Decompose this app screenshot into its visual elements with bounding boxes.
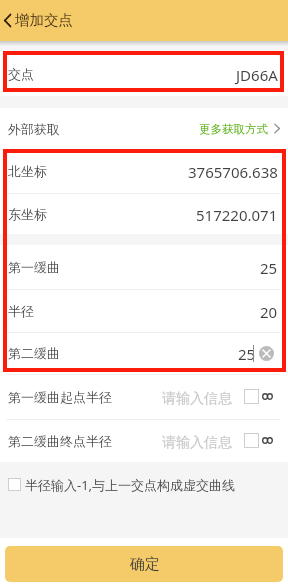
staticText: 25 bbox=[238, 344, 256, 364]
staticText: 20 bbox=[260, 302, 278, 322]
button[interactable]: Back bbox=[0, 0, 15, 41]
staticText: 增加交点 bbox=[15, 11, 73, 29]
staticText: 确定 bbox=[130, 555, 160, 574]
staticText: 3765706.638 bbox=[188, 162, 278, 182]
staticText: 请输入信息 bbox=[162, 434, 232, 452]
button[interactable]: Clear text bbox=[259, 346, 274, 361]
button[interactable]: 半径 bbox=[0, 289, 288, 332]
staticText: JD66A bbox=[236, 65, 278, 85]
staticText: 交点 bbox=[8, 66, 34, 82]
button[interactable]: 确定 bbox=[5, 546, 283, 582]
button[interactable]: 半径输入-1,与上一交点构成虚交曲线 bbox=[0, 470, 288, 498]
staticText: 半径输入-1,与上一交点构成虚交曲线 bbox=[25, 476, 236, 494]
staticText: 北坐标 bbox=[8, 163, 47, 179]
staticText: 25 bbox=[260, 258, 278, 278]
button[interactable]: 第二缓曲终点半径 bbox=[0, 419, 288, 462]
button[interactable]: 北坐标 bbox=[0, 149, 288, 193]
staticText: 请输入信息 bbox=[162, 390, 232, 408]
button[interactable]: 第二缓曲 bbox=[0, 332, 288, 374]
button[interactable]: 外部获取 bbox=[0, 108, 288, 149]
staticText: 东坐标 bbox=[8, 206, 47, 222]
staticText: 517220.071 bbox=[196, 205, 278, 225]
button[interactable]: 东坐标 bbox=[0, 193, 288, 234]
button[interactable]: 交点 bbox=[0, 51, 288, 96]
staticText: 半径 bbox=[8, 303, 34, 319]
staticText: 更多获取方式 bbox=[199, 122, 268, 136]
staticText: 第一缓曲起点半径 bbox=[8, 389, 112, 405]
staticText: 第二缓曲终点半径 bbox=[8, 433, 112, 449]
button[interactable]: 第一缓曲 bbox=[0, 245, 288, 289]
staticText: 外部获取 bbox=[8, 121, 60, 137]
button[interactable]: 第一缓曲起点半径 bbox=[0, 374, 288, 419]
staticText: 第二缓曲 bbox=[8, 345, 60, 361]
staticText: 第一缓曲 bbox=[8, 259, 60, 275]
